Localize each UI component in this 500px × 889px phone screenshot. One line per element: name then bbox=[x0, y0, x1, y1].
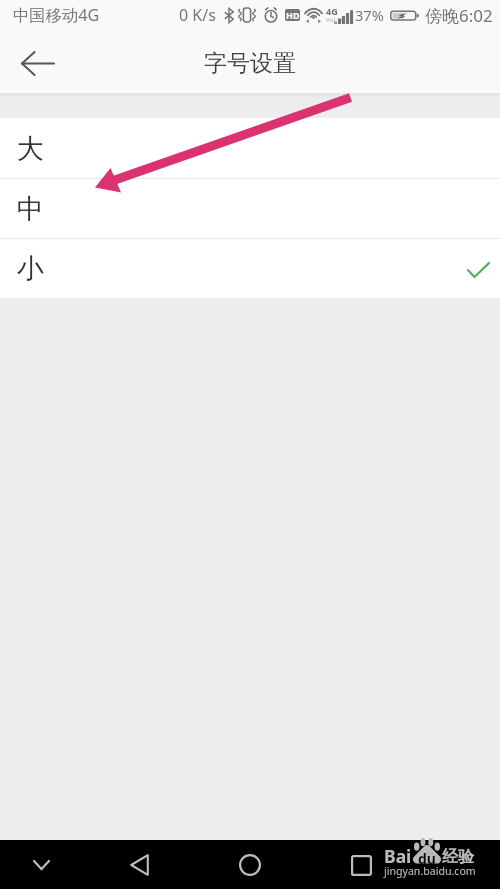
staticText: 0 K/s bbox=[179, 4, 216, 26]
button[interactable]: Recent apps bbox=[340, 844, 382, 886]
staticText: 经验 bbox=[442, 847, 474, 867]
button[interactable]: 小 bbox=[0, 238, 500, 298]
button[interactable]: Back bbox=[118, 844, 160, 886]
button[interactable]: 大 bbox=[0, 118, 500, 178]
staticText: du bbox=[418, 849, 436, 868]
button[interactable]: 中 bbox=[0, 178, 500, 238]
staticText: 字号设置 bbox=[204, 49, 296, 78]
staticText: Bai bbox=[384, 844, 412, 868]
staticText: jingyan.baidu.com bbox=[384, 864, 476, 878]
button[interactable]: Home bbox=[229, 844, 271, 886]
staticText: 大 bbox=[17, 132, 44, 166]
staticText: HD bbox=[286, 9, 300, 21]
staticText: VoLTE bbox=[326, 16, 344, 24]
staticText: 中 bbox=[17, 192, 44, 226]
button[interactable]: Back bbox=[0, 30, 68, 93]
staticText: 中国移动4G bbox=[13, 4, 100, 26]
staticText: 小 bbox=[17, 252, 44, 286]
button[interactable]: Hide keyboard bbox=[20, 844, 62, 886]
staticText: 傍晚6:02 bbox=[425, 4, 493, 27]
staticText: 37% bbox=[355, 5, 384, 25]
staticText: 4G bbox=[326, 5, 338, 17]
